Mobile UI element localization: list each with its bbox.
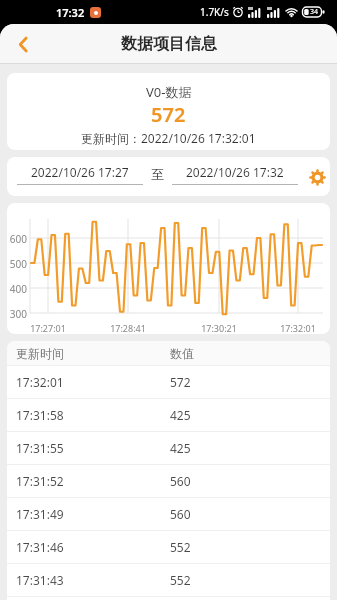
staticText: 560 (170, 506, 191, 522)
staticText: 数据项目信息 (121, 34, 217, 54)
staticText: 17:32:01 (16, 374, 64, 390)
button[interactable] (304, 164, 330, 190)
staticText: 34 (310, 7, 319, 17)
staticText: 1.7K/s (200, 5, 229, 19)
staticText: 2022/10/26 17:27 (31, 164, 129, 180)
staticText: 17:32 (56, 5, 85, 20)
staticText: 560 (170, 473, 191, 489)
staticText: 552 (170, 572, 191, 588)
button[interactable] (8, 29, 38, 59)
staticText: 17:31:49 (16, 506, 64, 522)
button[interactable]: 17:31:55 (7, 432, 330, 464)
staticText: 17:31:55 (16, 440, 64, 456)
button[interactable]: 17:31:58 (7, 399, 330, 431)
button[interactable]: 2022/10/26 17:27 (17, 157, 143, 196)
staticText: 425 (170, 440, 191, 456)
button[interactable]: 17:31:43 (7, 564, 330, 596)
staticText: 17:31:52 (16, 473, 64, 489)
staticText: 更新时间：2022/10/26 17:32:01 (81, 130, 256, 146)
staticText: 600 (9, 232, 27, 246)
staticText: 17:28:41 (103, 322, 153, 334)
button[interactable]: 17:31:49 (7, 498, 330, 530)
staticText: 552 (170, 539, 191, 555)
staticText: 2022/10/26 17:32 (186, 164, 284, 180)
staticText: 17:31:58 (16, 407, 64, 423)
staticText: 至 (151, 166, 164, 182)
staticText: 572 (170, 374, 191, 390)
staticText: 数值 (170, 346, 194, 361)
staticText: 17:31:43 (16, 572, 64, 588)
staticText: 17:32:01 (273, 322, 323, 334)
staticText: 400 (9, 282, 27, 296)
staticText: 500 (9, 257, 27, 271)
staticText: 17:30:21 (194, 322, 244, 334)
button[interactable]: 17:31:52 (7, 465, 330, 497)
button[interactable]: 17:31:46 (7, 531, 330, 563)
staticText: 更新时间 (16, 346, 64, 361)
button[interactable]: 17:32:01 (7, 366, 330, 398)
staticText: 425 (170, 407, 191, 423)
staticText: 572 (151, 101, 186, 128)
staticText: V0-数据 (146, 83, 192, 101)
staticText: 17:27:01 (23, 322, 73, 334)
button[interactable]: 2022/10/26 17:32 (172, 157, 298, 196)
staticText: 17:31:46 (16, 539, 64, 555)
staticText: 300 (9, 307, 27, 321)
